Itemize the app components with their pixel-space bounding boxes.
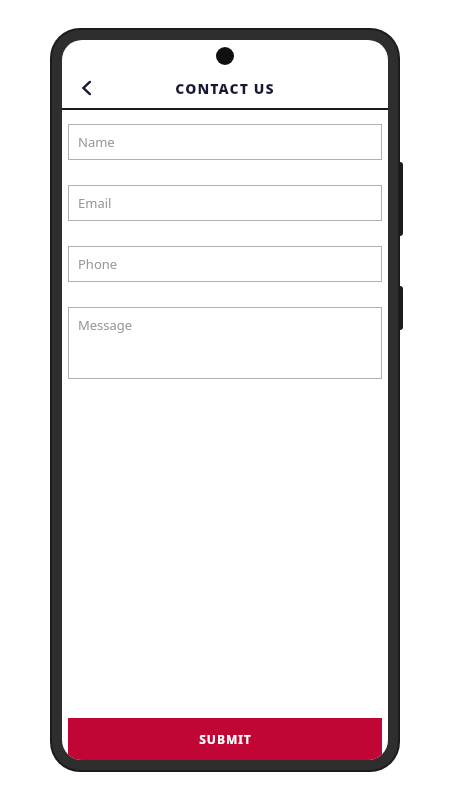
staticText: Name xyxy=(78,133,115,151)
button[interactable]: Back xyxy=(70,71,104,105)
staticText: CONTACT US xyxy=(175,79,275,98)
staticText: SUBMIT xyxy=(199,731,252,747)
staticText: Message xyxy=(78,316,133,334)
staticText: Phone xyxy=(78,255,118,273)
button[interactable]: Phone xyxy=(68,246,382,282)
staticText: Email xyxy=(78,194,112,212)
button[interactable]: Message xyxy=(68,307,382,379)
button[interactable]: Name xyxy=(68,124,382,160)
button[interactable]: Email xyxy=(68,185,382,221)
button[interactable]: SUBMIT xyxy=(68,718,382,760)
